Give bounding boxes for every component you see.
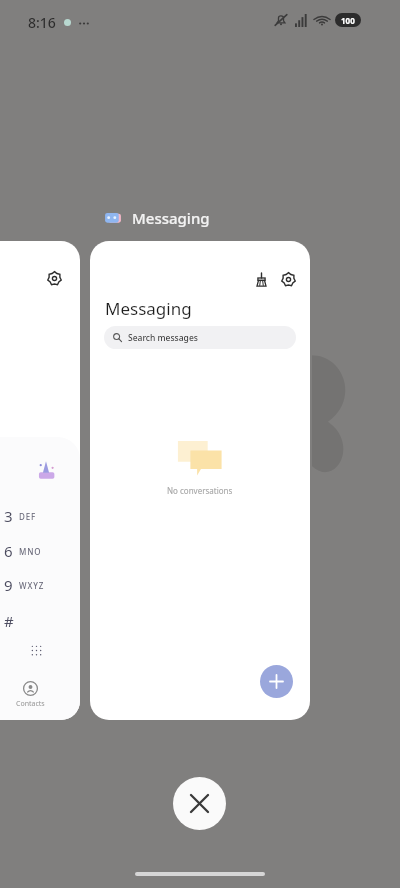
- button[interactable]: New conversation: [260, 665, 293, 698]
- button[interactable]: Phone app preview: [0, 241, 80, 720]
- staticText: MNO: [19, 546, 42, 557]
- staticText: 6: [4, 541, 13, 561]
- staticText: Messaging: [105, 297, 192, 320]
- button[interactable]: Clean up: [248, 266, 274, 292]
- staticText: Messaging: [132, 208, 210, 228]
- staticText: 8:16: [28, 13, 56, 32]
- staticText: 100: [341, 15, 355, 26]
- staticText: 3: [4, 506, 13, 526]
- staticText: 9: [4, 575, 13, 595]
- staticText: WXYZ: [19, 580, 45, 591]
- button[interactable]: Search messages: [104, 326, 296, 349]
- staticText: Search messages: [128, 332, 198, 344]
- staticText: #: [4, 611, 14, 631]
- staticText: Contacts: [16, 699, 45, 709]
- button[interactable]: Close all: [173, 777, 226, 830]
- staticText: DEF: [19, 511, 37, 522]
- button[interactable]: Messaging app preview: [90, 241, 310, 720]
- staticText: No conversations: [167, 485, 233, 496]
- button[interactable]: Settings: [275, 266, 301, 292]
